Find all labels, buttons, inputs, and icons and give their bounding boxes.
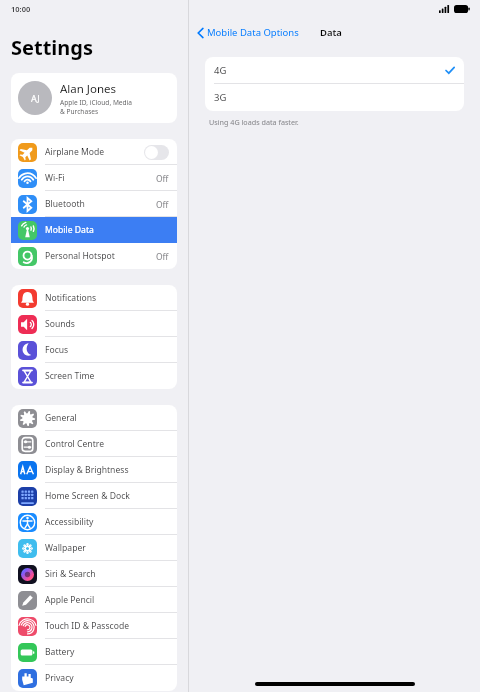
staticText: Wi-Fi (45, 172, 65, 184)
staticText: Notifications (45, 292, 97, 304)
staticText: Privacy (45, 672, 74, 684)
button[interactable]: Mobile Data (11, 217, 177, 243)
staticText: Data (320, 26, 342, 39)
staticText: Focus (45, 344, 69, 356)
button[interactable]: Touch ID & Passcode (11, 613, 177, 639)
button[interactable]: Home Screen & Dock (11, 483, 177, 509)
staticText: Screen Time (45, 370, 95, 382)
staticText: & Purchases (60, 107, 99, 116)
staticText: Off (156, 199, 169, 210)
button[interactable]: Screen Time (11, 363, 177, 389)
staticText: Apple ID, iCloud, Media (60, 98, 133, 107)
button[interactable]: Airplane Mode toggle (144, 145, 169, 160)
button[interactable]: Wallpaper (11, 535, 177, 561)
button[interactable]: Accessibility (11, 509, 177, 535)
button[interactable]: Focus (11, 337, 177, 363)
button[interactable]: Airplane Mode (11, 139, 177, 165)
staticText: Using 4G loads data faster. (209, 117, 299, 127)
staticText: Siri & Search (45, 568, 96, 580)
button[interactable]: Apple Pencil (11, 587, 177, 613)
staticText: Control Centre (45, 438, 104, 450)
staticText: Home Screen & Dock (45, 490, 130, 502)
staticText: Sounds (45, 318, 75, 330)
staticText: Alan Jones (60, 81, 117, 97)
staticText: Display & Brightness (45, 464, 129, 476)
staticText: Off (156, 251, 169, 262)
button[interactable]: 3G (205, 84, 464, 111)
staticText: 4G (214, 64, 227, 77)
staticText: Bluetooth (45, 198, 85, 210)
button[interactable]: Siri & Search (11, 561, 177, 587)
staticText: Airplane Mode (45, 146, 105, 158)
button[interactable]: Privacy (11, 665, 177, 691)
staticText: AJ (31, 92, 40, 104)
staticText: Personal Hotspot (45, 250, 115, 262)
staticText: Apple Pencil (45, 594, 95, 606)
button[interactable]: Mobile Data Options (197, 26, 299, 39)
staticText: General (45, 412, 77, 424)
button[interactable]: Control Centre (11, 431, 177, 457)
staticText: Mobile Data Options (207, 26, 299, 39)
staticText: Battery (45, 646, 75, 658)
button[interactable]: Wi-Fi (11, 165, 177, 191)
staticText: Mobile Data (45, 224, 94, 236)
button[interactable]: Personal Hotspot (11, 243, 177, 269)
button[interactable]: Display & Brightness (11, 457, 177, 483)
staticText: Wallpaper (45, 542, 86, 554)
button[interactable]: Battery (11, 639, 177, 665)
button[interactable]: General (11, 405, 177, 431)
staticText: 10:00 (11, 4, 31, 14)
staticText: 3G (214, 91, 227, 104)
button[interactable]: Notifications (11, 285, 177, 311)
button[interactable]: Sounds (11, 311, 177, 337)
staticText: Accessibility (45, 516, 94, 528)
staticText: Settings (11, 34, 93, 61)
button[interactable]: AJ (11, 73, 177, 123)
button[interactable]: 4G (205, 57, 464, 84)
staticText: Off (156, 173, 169, 184)
staticText: Touch ID & Passcode (45, 620, 130, 632)
button[interactable]: Bluetooth (11, 191, 177, 217)
